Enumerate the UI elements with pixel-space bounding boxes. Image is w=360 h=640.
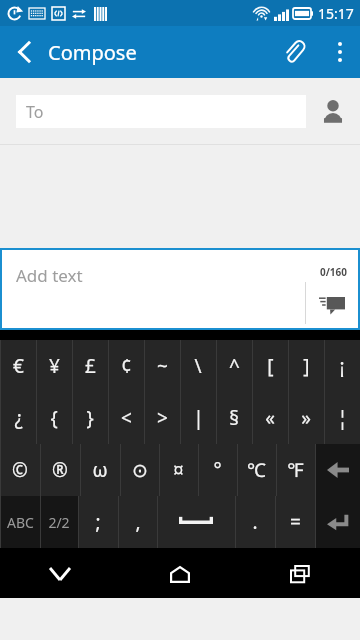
button[interactable]: £: [72, 340, 108, 392]
button[interactable]: °: [198, 444, 237, 496]
button[interactable]: ]: [288, 340, 324, 392]
button[interactable]: ℃: [237, 444, 276, 496]
button[interactable]: {: [36, 392, 72, 444]
staticText: <: [121, 405, 132, 431]
staticText: °: [213, 457, 222, 483]
staticText: =: [290, 509, 301, 535]
staticText: ®: [52, 457, 68, 483]
button[interactable]: ⊙: [120, 444, 159, 496]
button[interactable]: }: [72, 392, 108, 444]
staticText: «: [265, 405, 275, 431]
staticText: ¡: [339, 353, 345, 379]
staticText: »: [301, 405, 311, 431]
staticText: Compose: [48, 39, 137, 66]
staticText: Add text: [16, 264, 83, 287]
button[interactable]: ^: [216, 340, 252, 392]
button[interactable]: ω: [80, 444, 120, 496]
staticText: ω: [92, 457, 108, 483]
staticText: .: [252, 509, 258, 535]
button[interactable]: <: [108, 392, 144, 444]
staticText: ^: [229, 353, 240, 379]
staticText: 0/160: [320, 265, 348, 279]
staticText: 15:17: [318, 4, 354, 23]
staticText: To: [26, 101, 44, 123]
staticText: ¦: [337, 405, 348, 431]
button[interactable]: ~: [144, 340, 180, 392]
button[interactable]: ¤: [159, 444, 198, 496]
button[interactable]: Enter: [315, 496, 360, 548]
button[interactable]: ¥: [36, 340, 72, 392]
button[interactable]: ¿: [0, 392, 36, 444]
button[interactable]: Back: [0, 28, 48, 76]
staticText: ]: [303, 353, 310, 379]
staticText: [: [267, 353, 274, 379]
button[interactable]: .: [235, 496, 275, 548]
staticText: ABC: [7, 513, 34, 532]
button[interactable]: Pick contact: [306, 78, 360, 144]
staticText: £: [85, 353, 96, 379]
button[interactable]: ℉: [276, 444, 315, 496]
staticText: ¿: [14, 405, 23, 431]
staticText: {: [50, 405, 58, 431]
button[interactable]: \: [180, 340, 216, 392]
button[interactable]: =: [275, 496, 315, 548]
button[interactable]: «: [252, 392, 288, 444]
button[interactable]: ;: [78, 496, 118, 548]
staticText: >: [157, 405, 168, 431]
button[interactable]: 2/2: [40, 496, 78, 548]
button[interactable]: Backspace: [315, 444, 360, 496]
button[interactable]: ¡: [324, 340, 360, 392]
staticText: ⊙: [132, 459, 148, 481]
button[interactable]: More options: [320, 26, 360, 78]
button[interactable]: ©: [0, 444, 40, 496]
staticText: }: [86, 405, 94, 431]
staticText: ℃: [247, 457, 266, 483]
button[interactable]: Add text: [2, 250, 358, 328]
staticText: ¥: [49, 353, 60, 379]
staticText: ©: [12, 457, 28, 483]
button[interactable]: ¦: [324, 392, 360, 444]
staticText: 2/2: [48, 513, 70, 532]
button[interactable]: Hide keyboard: [0, 550, 120, 598]
button[interactable]: Recent apps: [240, 550, 360, 598]
button[interactable]: »: [288, 392, 324, 444]
button[interactable]: §: [216, 392, 252, 444]
staticText: €: [13, 353, 24, 379]
button[interactable]: >: [144, 392, 180, 444]
button[interactable]: Send message: [306, 282, 358, 328]
button[interactable]: Home: [120, 550, 240, 598]
button[interactable]: Attach: [272, 30, 316, 74]
staticText: ;: [95, 509, 101, 535]
staticText: §: [229, 405, 239, 431]
staticText: |: [193, 405, 204, 431]
button[interactable]: €: [0, 340, 36, 392]
button[interactable]: To: [16, 95, 306, 128]
staticText: ¢: [121, 353, 132, 379]
button[interactable]: Space: [157, 496, 235, 548]
button[interactable]: ®: [40, 444, 80, 496]
staticText: ~: [157, 353, 168, 379]
button[interactable]: ¢: [108, 340, 144, 392]
staticText: \: [194, 353, 202, 379]
button[interactable]: ,: [118, 496, 157, 548]
staticText: ℉: [287, 457, 304, 483]
button[interactable]: ABC: [0, 496, 40, 548]
staticText: ¤: [173, 457, 184, 483]
button[interactable]: |: [180, 392, 216, 444]
button[interactable]: [: [252, 340, 288, 392]
staticText: ,: [135, 509, 141, 535]
